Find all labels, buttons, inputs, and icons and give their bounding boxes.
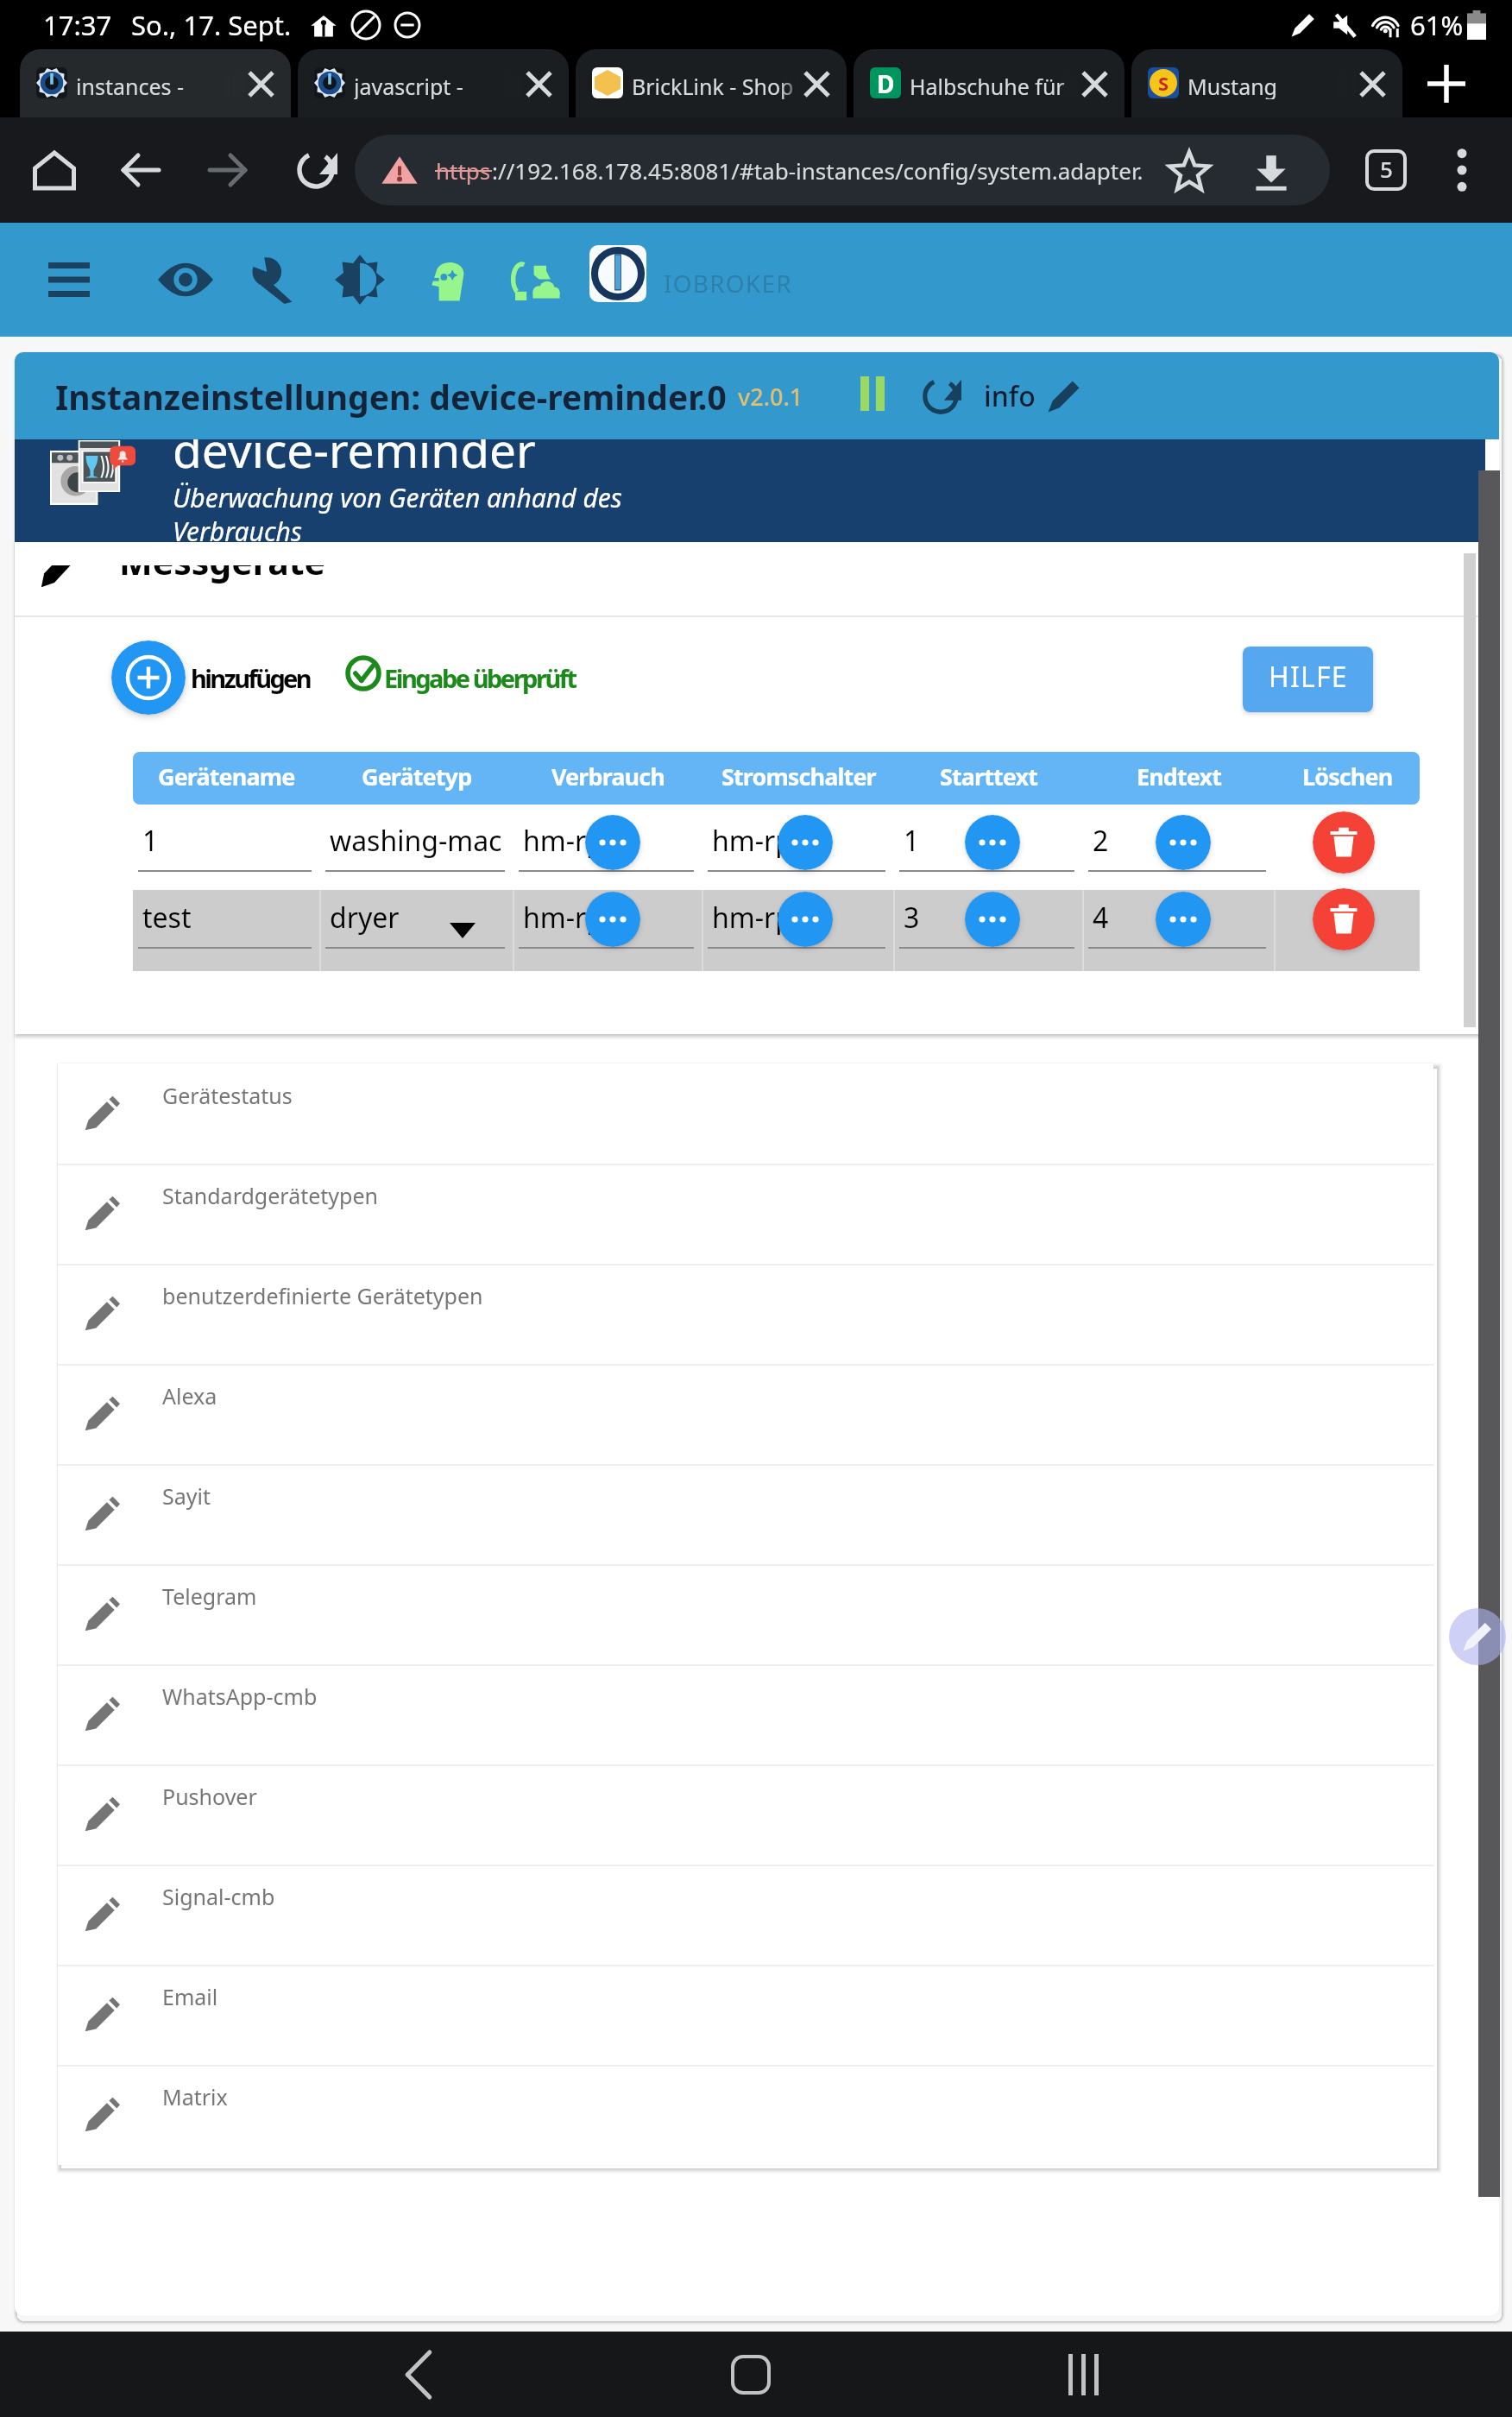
staticText: Messgeräte [119,542,326,585]
button[interactable]: Select [585,892,640,947]
staticText: WhatsApp-cmb [162,1682,318,1711]
button[interactable]: Close tab [1345,57,1399,110]
staticText: Starttext [940,760,1038,792]
button[interactable]: Recent apps [1036,2332,1131,2417]
button[interactable]: Reload [917,372,965,420]
button[interactable]: BrickLink - Shop Y [576,49,847,117]
staticText: Signal-cmb [162,1882,275,1911]
button[interactable]: Back [97,129,185,211]
button[interactable]: Expert mode [148,243,223,317]
button[interactable]: HILFE [1243,647,1373,712]
staticText: S [1158,70,1169,96]
button[interactable]: Hinzufügen [111,641,186,715]
button[interactable]: Theme [323,243,397,317]
staticText: hm-rp [712,899,792,937]
button[interactable]: Pushover [58,1764,1433,1865]
staticText: 5 [1380,154,1393,184]
button[interactable]: Select [778,815,833,870]
staticText: Instanzeinstellungen: device-reminder.0 [55,374,727,420]
staticText: 17:37 [43,7,112,43]
button[interactable]: Menu [30,241,108,319]
staticText: So., 17. Sept. [131,7,292,43]
button[interactable]: Löschen [1313,888,1375,950]
staticText: device-reminder [173,439,536,482]
button[interactable]: Select [1156,892,1211,947]
button[interactable]: Close tab [234,57,287,110]
button[interactable]: instances - iobrok [20,49,291,117]
button[interactable]: Home [10,129,98,211]
staticText: Pushover [162,1782,257,1811]
staticText: Gerätename [158,760,295,792]
staticText: Mustang Schuhe [1188,72,1357,99]
staticText: test [142,899,192,937]
button[interactable]: Select [778,892,833,947]
button[interactable]: https [355,135,1330,205]
staticText: HILFE [1269,658,1348,696]
staticText: Matrix [162,2082,228,2111]
button[interactable]: Edit [1040,372,1088,420]
staticText: instances - iobrok [76,72,245,99]
button[interactable]: Close tab [790,57,843,110]
button[interactable]: Gerätestatus [58,1063,1433,1164]
staticText: https [436,155,491,186]
staticText: benutzerdefinierte Gerätetypen [162,1281,483,1310]
staticText: hm-rp [712,822,792,860]
button[interactable]: Close tab [1068,57,1121,110]
button[interactable]: Select [965,892,1020,947]
button[interactable]: Reload [272,129,360,211]
staticText: Gerätestatus [162,1081,293,1110]
button[interactable]: Air command [1449,1608,1506,1665]
staticText: Verbrauchs [173,514,302,542]
staticText: Sayit [162,1481,211,1511]
button[interactable]: Telegram [58,1564,1433,1664]
button[interactable]: New tab [1418,55,1475,112]
button[interactable]: benutzerdefinierte Gerätetypen [58,1264,1433,1364]
staticText: Standardgerätetypen [162,1181,378,1210]
button[interactable]: S [1131,49,1402,117]
button[interactable]: Email [58,1965,1433,2065]
button[interactable]: Settings [236,243,310,317]
button[interactable]: Close tab [512,57,565,110]
button[interactable]: Expert [411,243,485,317]
button[interactable]: Alexa [58,1364,1433,1464]
staticText: hm-rp [523,899,603,937]
button[interactable]: D [854,49,1125,117]
button[interactable]: WhatsApp-cmb [58,1664,1433,1764]
button[interactable]: Update [499,243,573,317]
staticText: Halbschuhe für Da [910,72,1079,99]
button[interactable]: javascript - iobrok [298,49,569,117]
staticText: IOBROKER [664,267,792,300]
button[interactable]: Home [703,2332,798,2417]
staticText: 61% [1410,7,1464,43]
button[interactable]: Sayit [58,1464,1433,1564]
staticText: 1 [142,822,159,860]
button[interactable]: Standardgerätetypen [58,1164,1433,1264]
button[interactable]: Tabs [1357,141,1415,199]
staticText: 2 [1093,822,1109,860]
staticText: javascript - iobrok [354,72,523,99]
staticText: 4 [1093,899,1109,937]
button[interactable]: Signal-cmb [58,1865,1433,1965]
button[interactable]: Bookmark [1163,147,1215,199]
staticText: Überwachung von Geräten anhand des [173,480,622,515]
button[interactable]: Matrix [58,2065,1433,2165]
button[interactable]: More options [1433,141,1491,199]
staticText: Gerätetyp [362,760,472,792]
button[interactable]: Download [1245,147,1297,199]
staticText: 1 [904,822,920,860]
staticText: hm-rp [523,822,603,860]
staticText: Endtext [1137,760,1222,792]
button[interactable]: Forward [184,129,272,211]
button[interactable]: Select [585,815,640,870]
button[interactable]: Löschen [1313,811,1375,874]
staticText: info [984,377,1036,415]
staticText: Löschen [1302,760,1393,792]
staticText: v2.0.1 [738,381,803,413]
button[interactable]: Select [965,815,1020,870]
staticText: Stromschalter [721,760,876,792]
button[interactable]: Select [1156,815,1211,870]
staticText: Eingabe überprüft [384,661,576,695]
staticText: Alexa [162,1381,217,1410]
staticText: Verbrauch [551,760,665,792]
button[interactable]: Back [371,2332,466,2417]
